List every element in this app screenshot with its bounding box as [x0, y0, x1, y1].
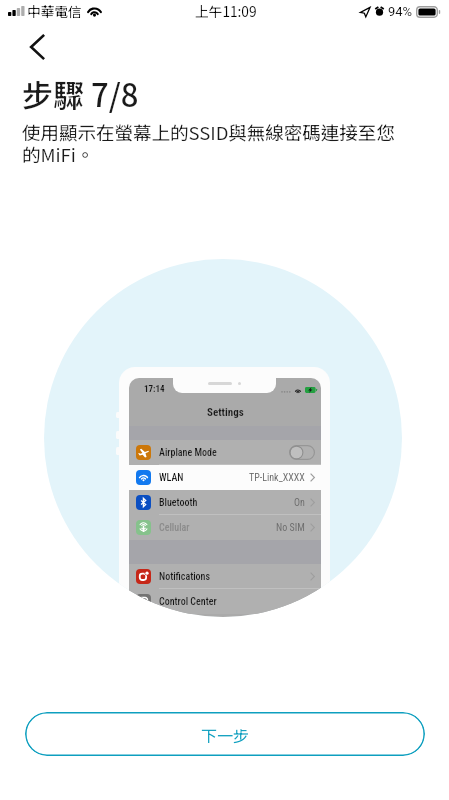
staticText: 下一步 [201, 723, 250, 746]
staticText: No SIM [276, 522, 305, 534]
button[interactable]: WLAN [129, 465, 321, 490]
staticText: Airplane Mode [159, 447, 217, 459]
staticText: 步驟 7/8 [22, 71, 139, 116]
button[interactable]: Bluetooth [129, 490, 321, 515]
button[interactable]: Airplane Mode [129, 440, 321, 465]
staticText: Control Center [159, 596, 217, 608]
button[interactable]: Control Center [129, 589, 321, 614]
staticText: On [294, 497, 305, 509]
staticText: Bluetooth [159, 497, 198, 509]
staticText: 上午11:09 [195, 1, 257, 21]
staticText: Notifications [159, 571, 211, 583]
staticText: Cellular [159, 522, 190, 534]
staticText: 中華電信 [27, 1, 82, 21]
staticText: WLAN [159, 472, 184, 484]
staticText: 使用顯示在螢幕上的SSID與無線密碼連接至您的MiFi。 [22, 119, 402, 168]
button[interactable]: 下一步 [25, 712, 425, 756]
staticText: TP-Link_XXXX [249, 472, 305, 484]
staticText: 17:14 [144, 384, 165, 395]
button[interactable]: Back [23, 33, 51, 61]
button[interactable]: Notifications [129, 564, 321, 589]
staticText: 94% [388, 4, 413, 19]
staticText: Settings [207, 406, 244, 419]
button[interactable]: Cellular [129, 515, 321, 540]
